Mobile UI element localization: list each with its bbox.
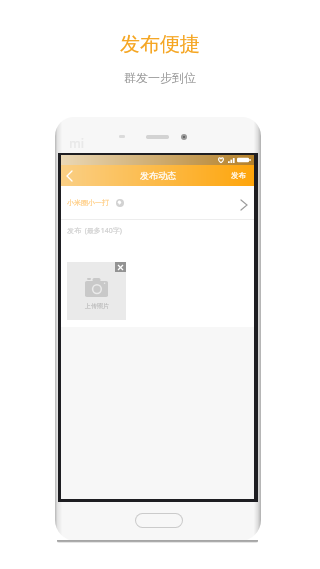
button[interactable]: 发布 (225, 165, 254, 186)
staticText: 群发一步到位 (124, 70, 196, 85)
button[interactable]: Home (136, 514, 182, 527)
staticText: 发布便捷 (120, 32, 200, 57)
staticText: 上传照片 (85, 302, 109, 310)
staticText: 发布 (231, 171, 246, 180)
staticText: mi (69, 135, 85, 152)
button[interactable]: Remove photo (115, 262, 126, 272)
staticText: 发布动态 (140, 170, 176, 181)
button[interactable]: 小米圈小一打 (61, 186, 254, 219)
button[interactable]: Back (61, 165, 81, 186)
staticText: 发布 (最多140字) (67, 226, 122, 236)
staticText: 小米圈小一打 (67, 198, 109, 207)
button[interactable]: Upload photo (67, 262, 126, 320)
